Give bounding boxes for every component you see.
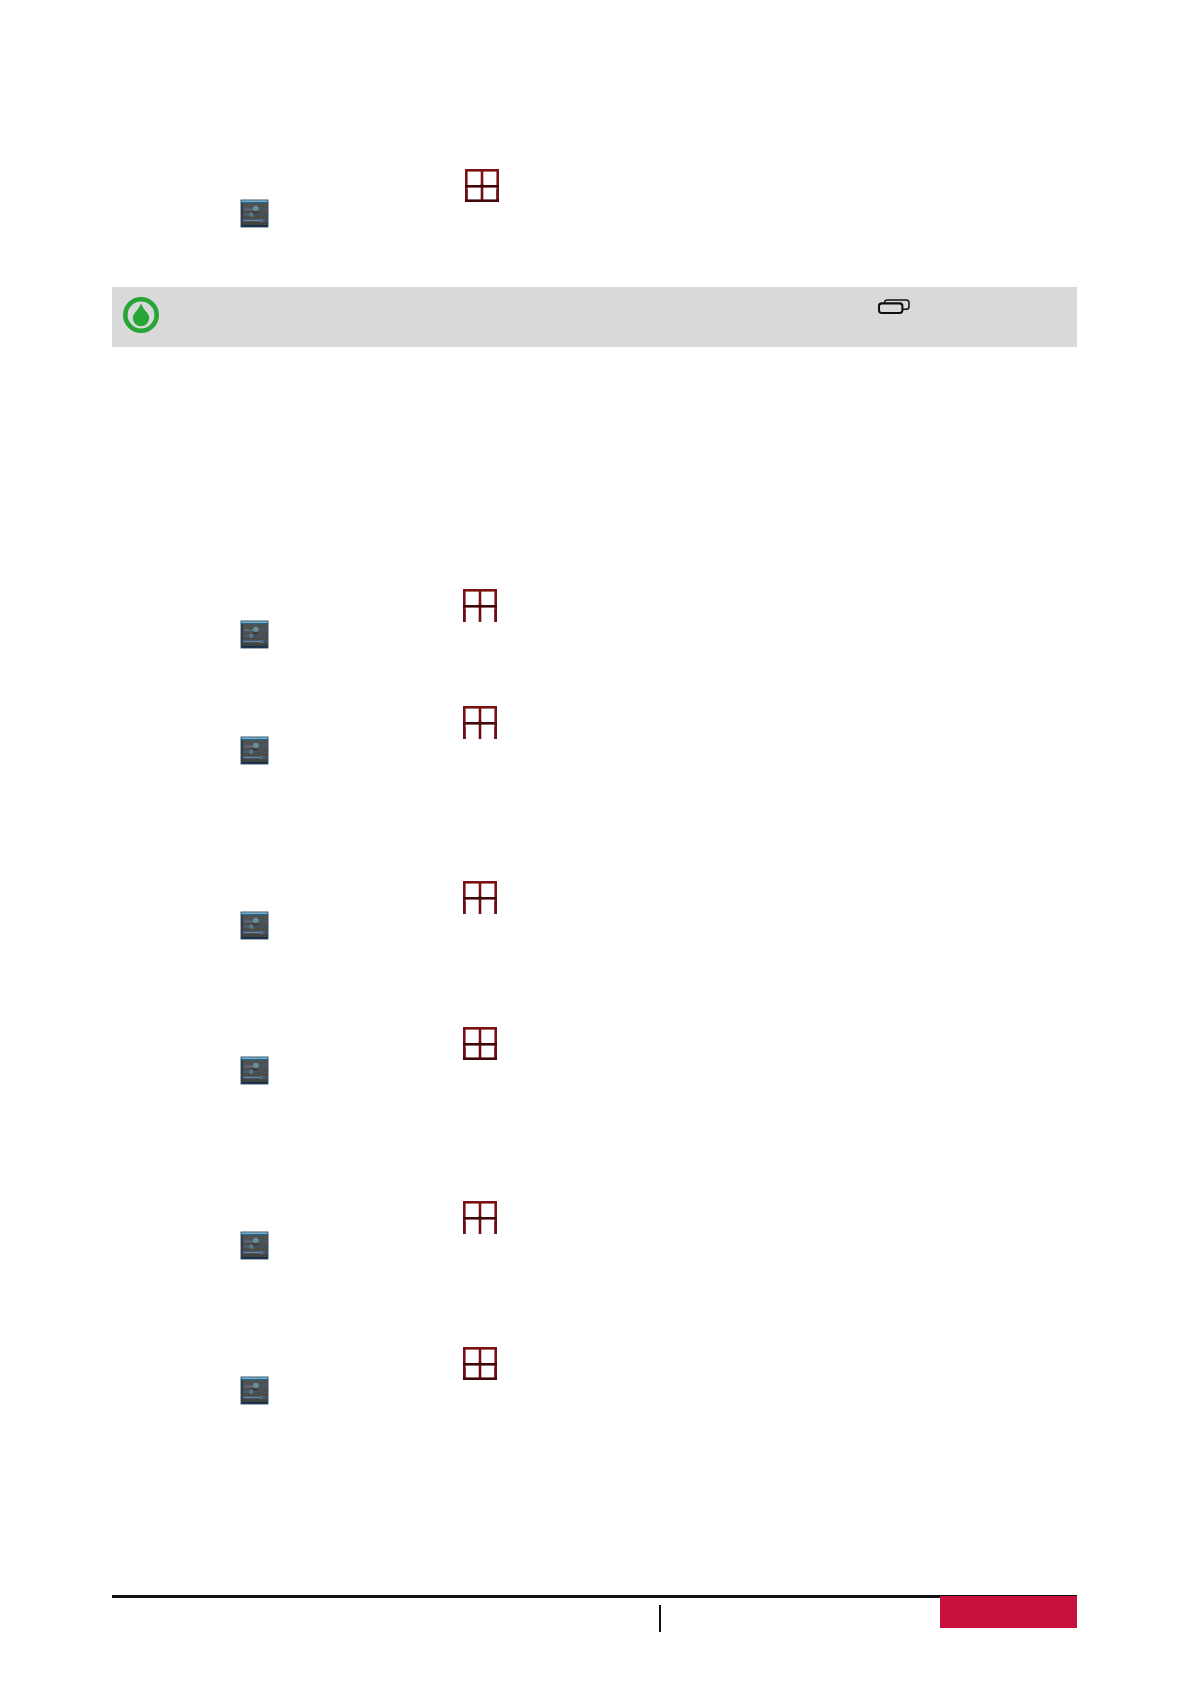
- button[interactable]: Screenshot: [241, 737, 268, 764]
- button[interactable]: Table: [463, 589, 497, 622]
- button[interactable]: Screenshot: [241, 1057, 268, 1084]
- button[interactable]: Table: [463, 881, 497, 914]
- button[interactable]: Table: [463, 1027, 497, 1060]
- button[interactable]: [112, 287, 1077, 347]
- button[interactable]: Table: [463, 1347, 497, 1380]
- button[interactable]: Water drop: [123, 297, 159, 333]
- button[interactable]: Table: [463, 1201, 497, 1234]
- button[interactable]: Screenshot: [241, 621, 268, 648]
- button[interactable]: Screenshot: [241, 1232, 268, 1259]
- button[interactable]: Copy: [879, 300, 909, 313]
- button[interactable]: Table: [465, 169, 499, 202]
- button[interactable]: Screenshot: [241, 200, 268, 227]
- button[interactable]: Screenshot: [241, 912, 268, 939]
- button[interactable]: Table: [463, 706, 497, 739]
- button[interactable]: Screenshot: [241, 1377, 268, 1404]
